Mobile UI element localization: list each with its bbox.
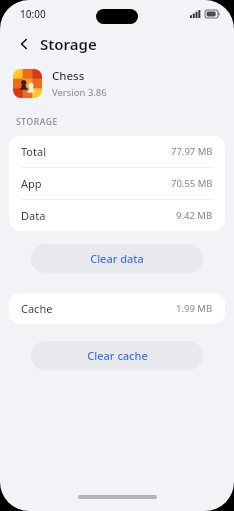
- button[interactable]: Data: [9, 200, 225, 231]
- staticText: 10:00: [20, 7, 46, 21]
- staticText: App: [21, 176, 42, 191]
- button[interactable]: Cache: [9, 293, 225, 324]
- staticText: Data: [21, 208, 46, 223]
- button[interactable]: Clear data: [31, 244, 203, 273]
- button[interactable]: Clear cache: [31, 341, 203, 370]
- button[interactable]: Total: [9, 136, 225, 167]
- staticText: Chess: [52, 68, 85, 84]
- button[interactable]: App: [9, 168, 225, 199]
- staticText: Total: [21, 144, 46, 159]
- staticText: 70.55 MB: [171, 177, 213, 190]
- staticText: STORAGE: [16, 116, 58, 128]
- staticText: Version 3.86: [52, 86, 107, 99]
- button[interactable]: Back: [13, 33, 35, 55]
- staticText: 1.99 MB: [176, 302, 213, 315]
- staticText: Cache: [21, 301, 53, 316]
- staticText: Clear data: [90, 251, 144, 266]
- staticText: Storage: [40, 34, 97, 54]
- staticText: 77.97 MB: [171, 145, 213, 158]
- staticText: 9.42 MB: [176, 209, 213, 222]
- staticText: Clear cache: [87, 348, 148, 363]
